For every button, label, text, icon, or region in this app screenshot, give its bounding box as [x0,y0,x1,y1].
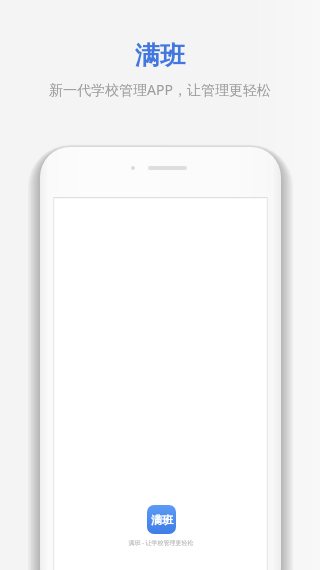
staticText: 满班 [151,513,173,527]
other: 满班 app icon [147,505,176,534]
staticText: 满班 [135,40,185,71]
button[interactable]: 满班 app icon [128,505,194,547]
staticText: 新一代学校管理APP，让管理更轻松 [49,80,271,99]
staticText: 满班 - 让学校管理更轻松 [128,539,194,547]
